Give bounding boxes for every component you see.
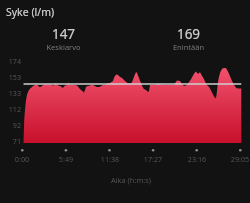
button[interactable]: 169 [126,20,250,56]
staticText: 17:27 [123,154,183,164]
button[interactable]: Syke (l/m) [0,0,250,24]
staticText: Keskiarvo [1,42,126,52]
staticText: 153 [0,72,21,82]
staticText: Enintään [126,42,250,52]
staticText: 169 [126,25,250,43]
button[interactable]: Heart rate chart [23,58,242,148]
staticText: Syke (l/m) [6,5,55,19]
staticText: 29:05 [210,154,250,164]
staticText: 71 [0,136,21,146]
staticText: 23:16 [167,154,227,164]
staticText: 5:49 [36,154,96,164]
staticText: 0:00 [0,154,52,164]
staticText: 112 [0,104,21,114]
staticText: 133 [0,88,21,98]
staticText: 147 [1,25,126,43]
staticText: 11:38 [80,154,140,164]
staticText: Aika (h:m:s) [101,175,161,185]
button[interactable]: 147 [1,20,126,56]
staticText: 92 [0,120,21,130]
staticText: 174 [0,56,21,66]
